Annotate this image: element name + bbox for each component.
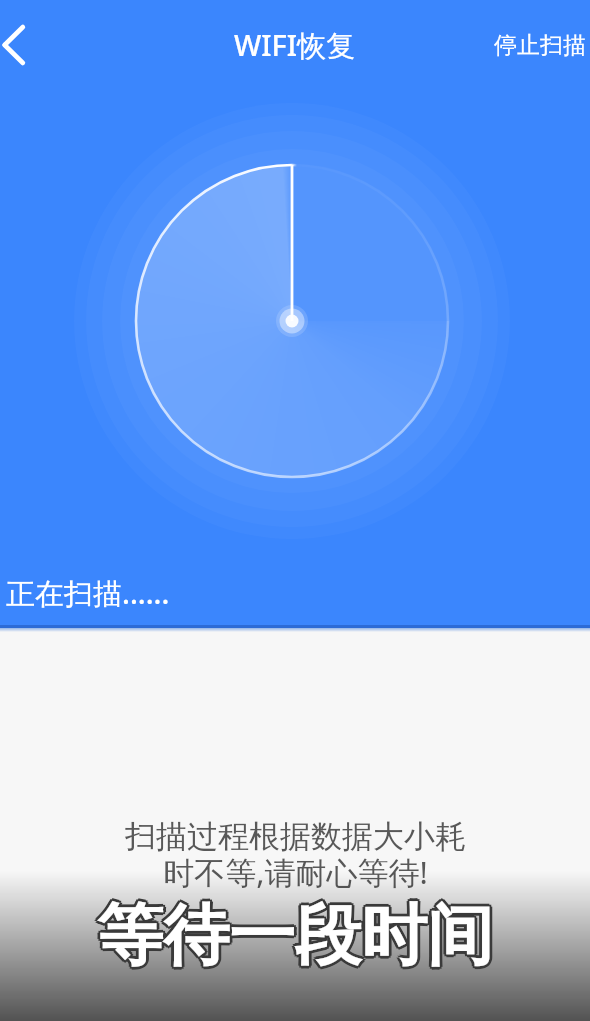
staticText: 等待一段时间: [97, 894, 493, 977]
staticText: 等待一段时间: [97, 897, 493, 980]
staticText: 等待一段时间: [99, 892, 495, 975]
button[interactable]: 停止扫描: [484, 21, 590, 70]
staticText: 等待一段时间: [100, 894, 496, 977]
staticText: 等待一段时间: [95, 896, 491, 979]
staticText: 等待一段时间: [94, 894, 490, 977]
staticText: 等待一段时间: [95, 892, 491, 975]
staticText: 等待一段时间: [97, 896, 493, 979]
staticText: 等待一段时间: [99, 896, 495, 979]
staticText: 等待一段时间: [99, 894, 495, 977]
staticText: 扫描过程根据数据大小耗 时不等,请耐心等待!: [125, 817, 466, 893]
staticText: 等待一段时间: [95, 894, 491, 977]
button[interactable]: Back: [0, 14, 39, 76]
staticText: 等待一段时间: [97, 892, 493, 975]
staticText: 正在扫描......: [6, 573, 170, 613]
staticText: 停止扫描: [494, 31, 586, 60]
staticText: 等待一段时间: [97, 891, 493, 974]
staticText: WIFI恢复: [234, 25, 356, 65]
